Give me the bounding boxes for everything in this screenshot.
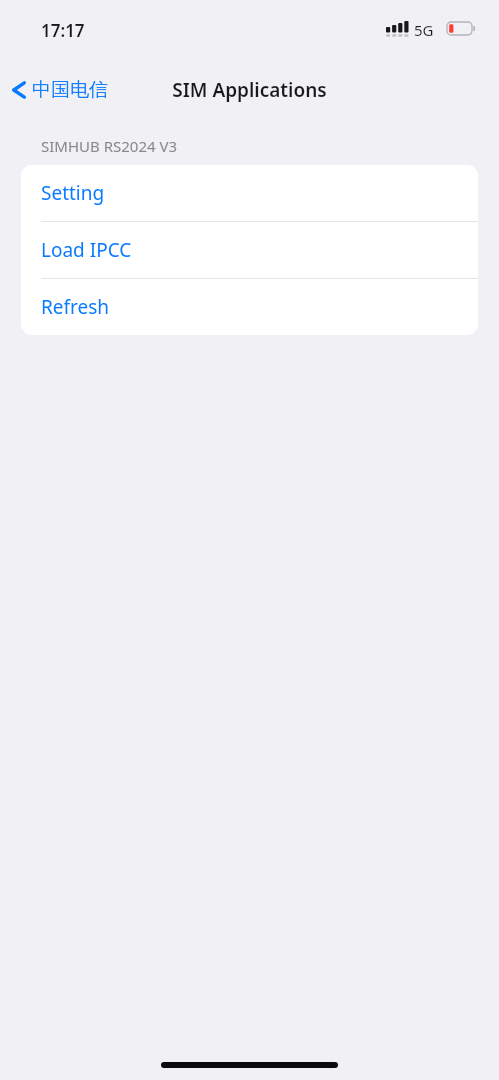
- staticText: SIMHUB RS2024 V3: [41, 136, 178, 156]
- staticText: 5G: [414, 20, 434, 40]
- staticText: Load IPCC: [41, 237, 132, 263]
- button[interactable]: Load IPCC: [21, 222, 478, 279]
- button[interactable]: Setting: [21, 165, 478, 222]
- staticText: SIM Applications: [172, 77, 327, 103]
- staticText: Setting: [41, 180, 105, 206]
- staticText: 中国电信: [32, 78, 108, 102]
- button[interactable]: 中国电信: [6, 74, 116, 106]
- staticText: 17:17: [41, 19, 85, 42]
- button[interactable]: Refresh: [21, 279, 478, 335]
- staticText: Refresh: [41, 294, 110, 320]
